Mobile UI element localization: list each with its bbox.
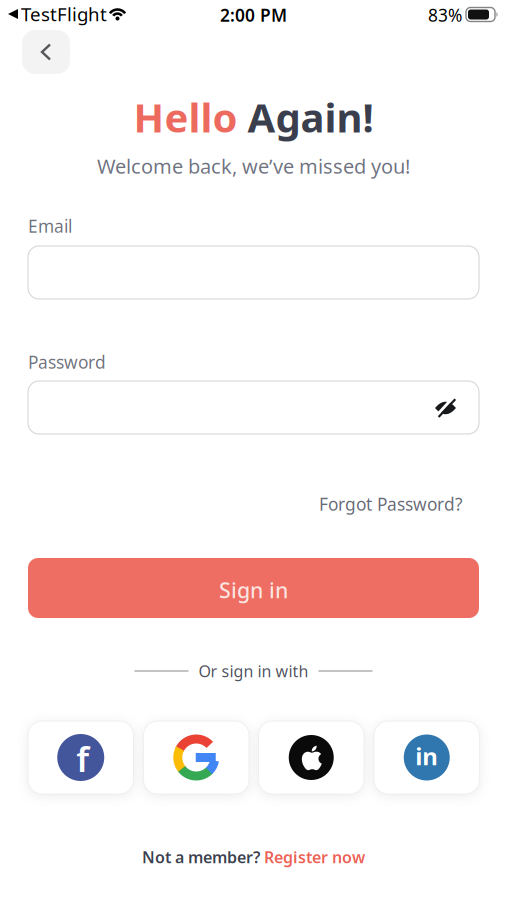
button[interactable]: Back (22, 30, 70, 74)
button[interactable]: Sign in with Apple (258, 721, 364, 794)
staticText: Again! (237, 90, 373, 143)
staticText: Password (28, 350, 106, 373)
staticText: TestFlight (21, 2, 107, 26)
staticText: f (76, 735, 89, 781)
staticText: Sign in (219, 576, 288, 604)
staticText: Email (28, 214, 72, 237)
button[interactable]: Show password (435, 399, 456, 417)
staticText: 2:00 PM (220, 3, 287, 26)
staticText: Hello (133, 90, 237, 143)
staticText: Welcome back, we’ve missed you! (97, 153, 410, 179)
button[interactable]: Sign in with Google (143, 721, 249, 794)
button[interactable]: Forgot Password? (319, 492, 463, 515)
staticText: Not a member? (142, 846, 264, 868)
staticText: Forgot Password? (319, 492, 463, 515)
staticText: in (415, 740, 438, 772)
button[interactable]: Sign in with Facebook (28, 721, 133, 794)
staticText: Register now (264, 846, 365, 868)
button[interactable]: Sign in (28, 558, 479, 618)
button[interactable]: Sign in with LinkedIn (374, 721, 479, 794)
staticText: 83% (428, 3, 462, 26)
button[interactable]: Not a member? (142, 846, 365, 868)
staticText: Or sign in with (198, 660, 308, 682)
